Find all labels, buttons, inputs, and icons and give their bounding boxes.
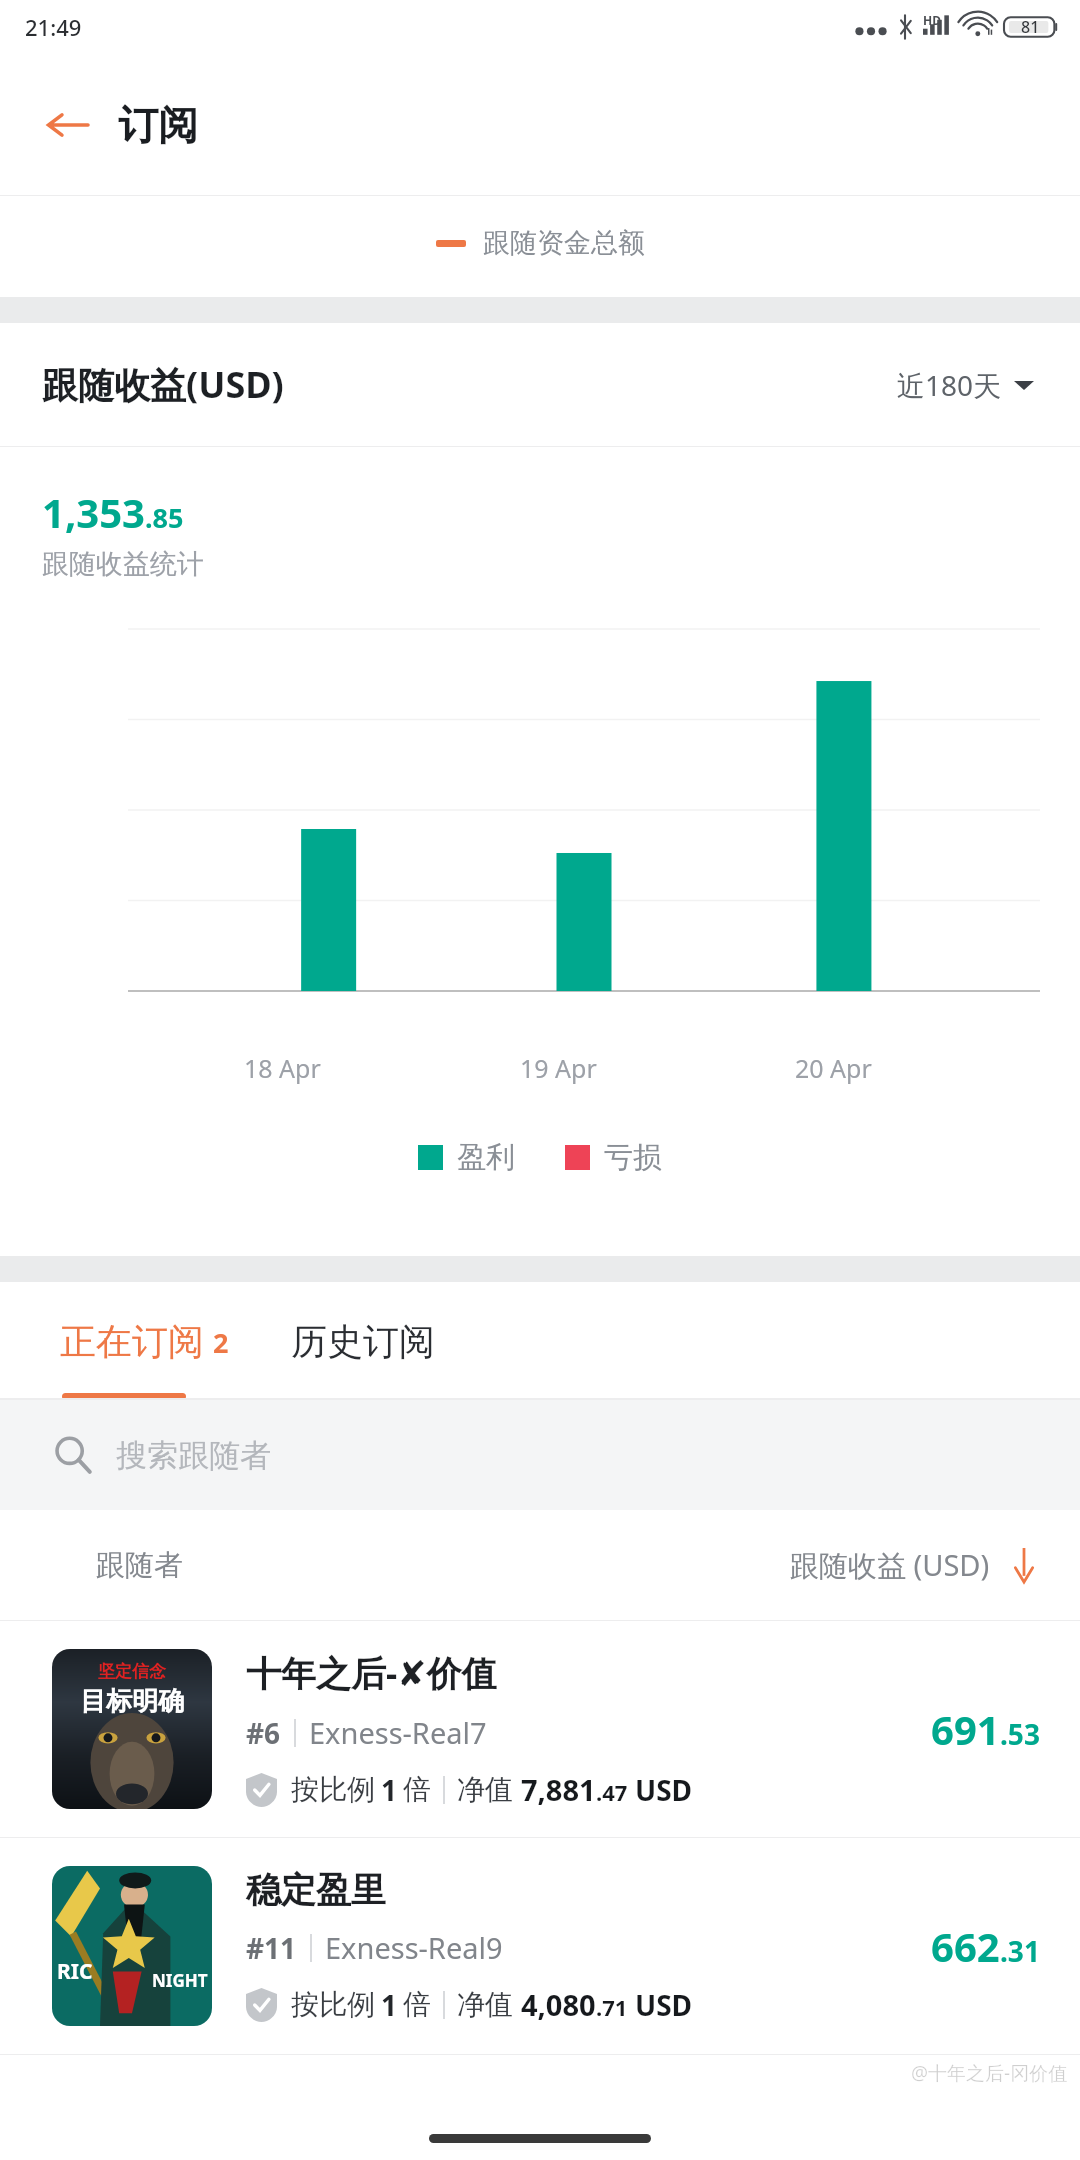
staticText: 净值	[457, 1987, 513, 2022]
staticText: 按比例	[291, 1987, 375, 2022]
staticText: .47	[596, 1777, 628, 1807]
staticText: 倍	[403, 1987, 431, 2022]
staticText: .53	[1000, 1715, 1040, 1753]
staticText: #11	[246, 1929, 297, 1967]
staticText: 目标明确	[80, 1685, 184, 1718]
staticText: 691	[931, 1702, 1000, 1756]
staticText: 跟随收益(USD)	[42, 360, 284, 409]
staticText: 订阅	[118, 100, 198, 150]
staticText: 历史订阅	[291, 1319, 435, 1364]
staticText: 跟随收益统计	[42, 547, 204, 581]
staticText: 2	[213, 1324, 229, 1361]
staticText: 按比例	[291, 1772, 375, 1807]
staticText: .31	[1000, 1932, 1040, 1970]
staticText: Exness-Real7	[309, 1713, 487, 1752]
staticText: Exness-Real9	[325, 1928, 503, 1967]
staticText: 稳定盈里	[246, 1868, 386, 1912]
button[interactable]: RIC	[0, 1838, 1080, 2055]
staticText: NIGHT	[152, 1969, 208, 1992]
staticText: 1	[381, 1986, 398, 2024]
button[interactable]: Back	[40, 98, 94, 152]
staticText: 21:49	[25, 12, 82, 42]
staticText: 亏损	[604, 1139, 662, 1176]
staticText: #6	[246, 1714, 281, 1752]
button[interactable]: 历史订阅	[275, 1301, 451, 1382]
button[interactable]: 正在订阅	[0, 1301, 259, 1382]
button[interactable]: 近180天	[893, 356, 1038, 414]
staticText: @十年之后-冈价值	[911, 2060, 1068, 2086]
staticText: 20 Apr	[795, 1051, 872, 1085]
other: Sort descending	[1012, 1548, 1036, 1582]
staticText: 662	[931, 1919, 1000, 1973]
button[interactable]: 坚定信念	[0, 1621, 1080, 1838]
staticText: 十年之后-✘价值	[246, 1649, 497, 1697]
staticText: USD	[635, 1986, 693, 2024]
staticText: 盈利	[457, 1139, 515, 1176]
staticText: 坚定信念	[98, 1661, 166, 1682]
staticText: 正在订阅	[60, 1319, 204, 1364]
staticText: USD	[635, 1771, 693, 1809]
staticText: 跟随收益 (USD)	[790, 1545, 990, 1585]
button[interactable]: 搜索跟随者	[0, 1400, 1080, 1510]
staticText: 近180天	[897, 366, 1002, 404]
button[interactable]: 跟随收益 (USD)	[786, 1535, 1040, 1595]
staticText: RIC	[57, 1957, 93, 1986]
staticText: HD	[923, 12, 941, 28]
staticText: .85	[145, 499, 184, 536]
staticText: 4,080	[521, 1985, 596, 2024]
staticText: 跟随资金总额	[483, 226, 645, 260]
staticText: 跟随者	[96, 1547, 183, 1584]
staticText: 18 Apr	[244, 1051, 321, 1085]
staticText: .71	[596, 1992, 628, 2022]
staticText: 7,881	[521, 1770, 596, 1809]
staticText: 搜索跟随者	[116, 1436, 271, 1475]
staticText: 净值	[457, 1772, 513, 1807]
staticText: 1	[381, 1771, 398, 1809]
staticText: 倍	[403, 1772, 431, 1807]
staticText: 1,353	[42, 485, 145, 539]
staticText: 19 Apr	[520, 1051, 597, 1085]
staticText: 81	[1021, 16, 1040, 38]
